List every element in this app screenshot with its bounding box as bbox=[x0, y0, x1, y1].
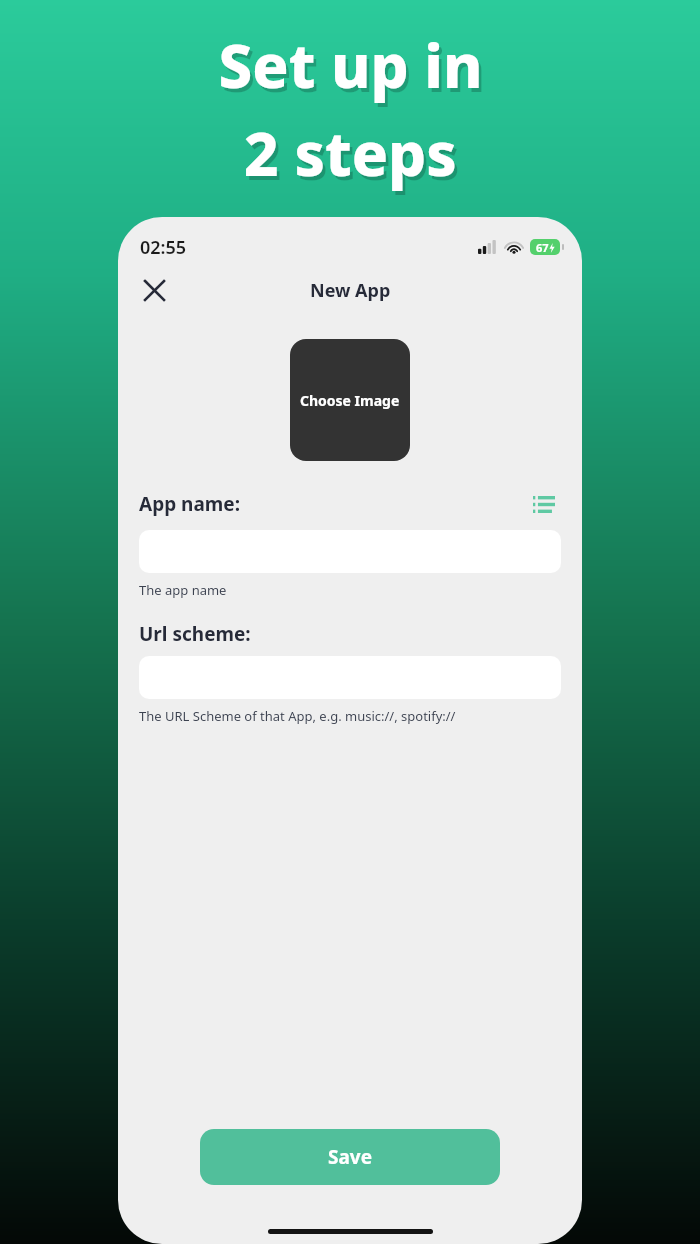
staticText: 2 steps bbox=[244, 112, 457, 194]
staticText: 2 steps bbox=[247, 116, 460, 198]
staticText: 02:55 bbox=[140, 235, 187, 260]
staticText: The URL Scheme of that App, e.g. music:/… bbox=[139, 707, 456, 725]
staticText: Url scheme: bbox=[139, 621, 251, 647]
staticText: Choose Image bbox=[300, 391, 400, 410]
staticText: Set up in bbox=[221, 28, 486, 110]
staticText: Set up in bbox=[218, 24, 483, 106]
staticText: The app name bbox=[139, 581, 227, 599]
button[interactable]: Close bbox=[134, 270, 174, 310]
staticText: New App bbox=[310, 278, 391, 303]
button[interactable]: Choose Image bbox=[290, 339, 410, 461]
staticText: App name: bbox=[139, 491, 241, 517]
staticText: Save bbox=[328, 1144, 373, 1170]
button[interactable]: Save bbox=[200, 1129, 500, 1185]
staticText: 67 bbox=[536, 240, 549, 255]
button[interactable]: Suggestions list bbox=[527, 487, 561, 521]
